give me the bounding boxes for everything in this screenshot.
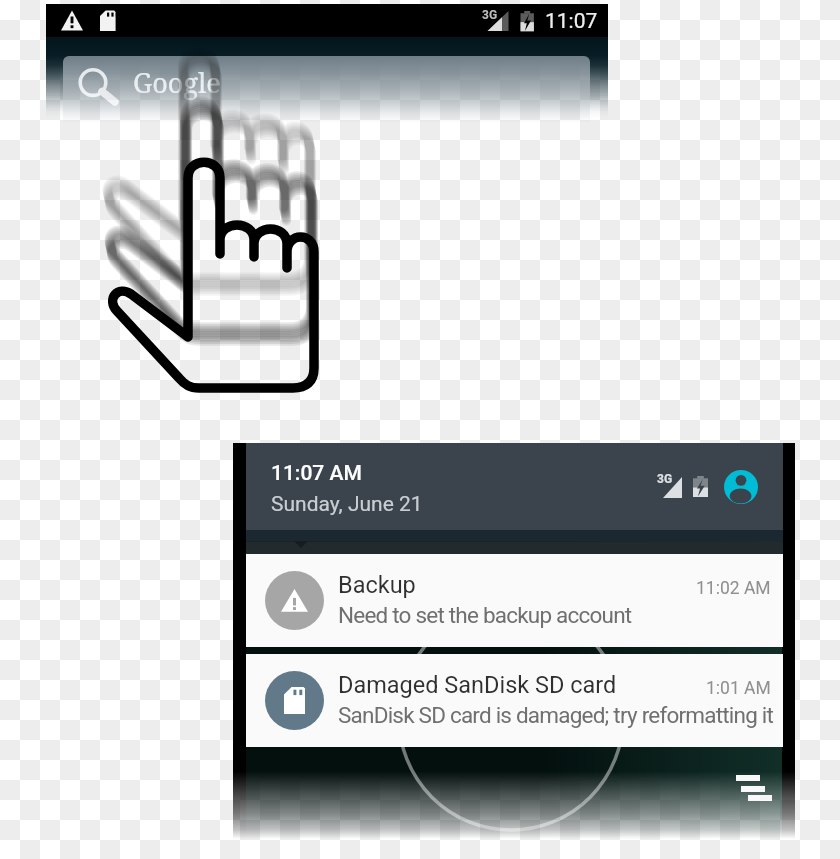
staticText: 3G <box>482 8 498 22</box>
staticText: Backup <box>338 571 416 599</box>
staticText: 11:02 AM <box>696 578 771 599</box>
staticText: Need to set the backup account <box>338 602 632 628</box>
staticText: 1:01 AM <box>706 678 771 699</box>
button[interactable]: User profile <box>724 470 758 504</box>
button[interactable]: Recent apps <box>730 767 778 809</box>
button[interactable]: Backup <box>246 554 783 647</box>
staticText: Sunday, June 21 <box>271 492 423 517</box>
staticText: 11:07 AM <box>271 461 362 486</box>
staticText: SanDisk SD card is damaged; try reformat… <box>338 702 774 728</box>
staticText: 3G <box>657 472 673 486</box>
staticText: 11:07 <box>545 9 598 34</box>
button[interactable]: Damaged SanDisk SD card <box>246 654 783 747</box>
staticText: Google <box>133 64 221 101</box>
staticText: Damaged SanDisk SD card <box>338 671 617 699</box>
